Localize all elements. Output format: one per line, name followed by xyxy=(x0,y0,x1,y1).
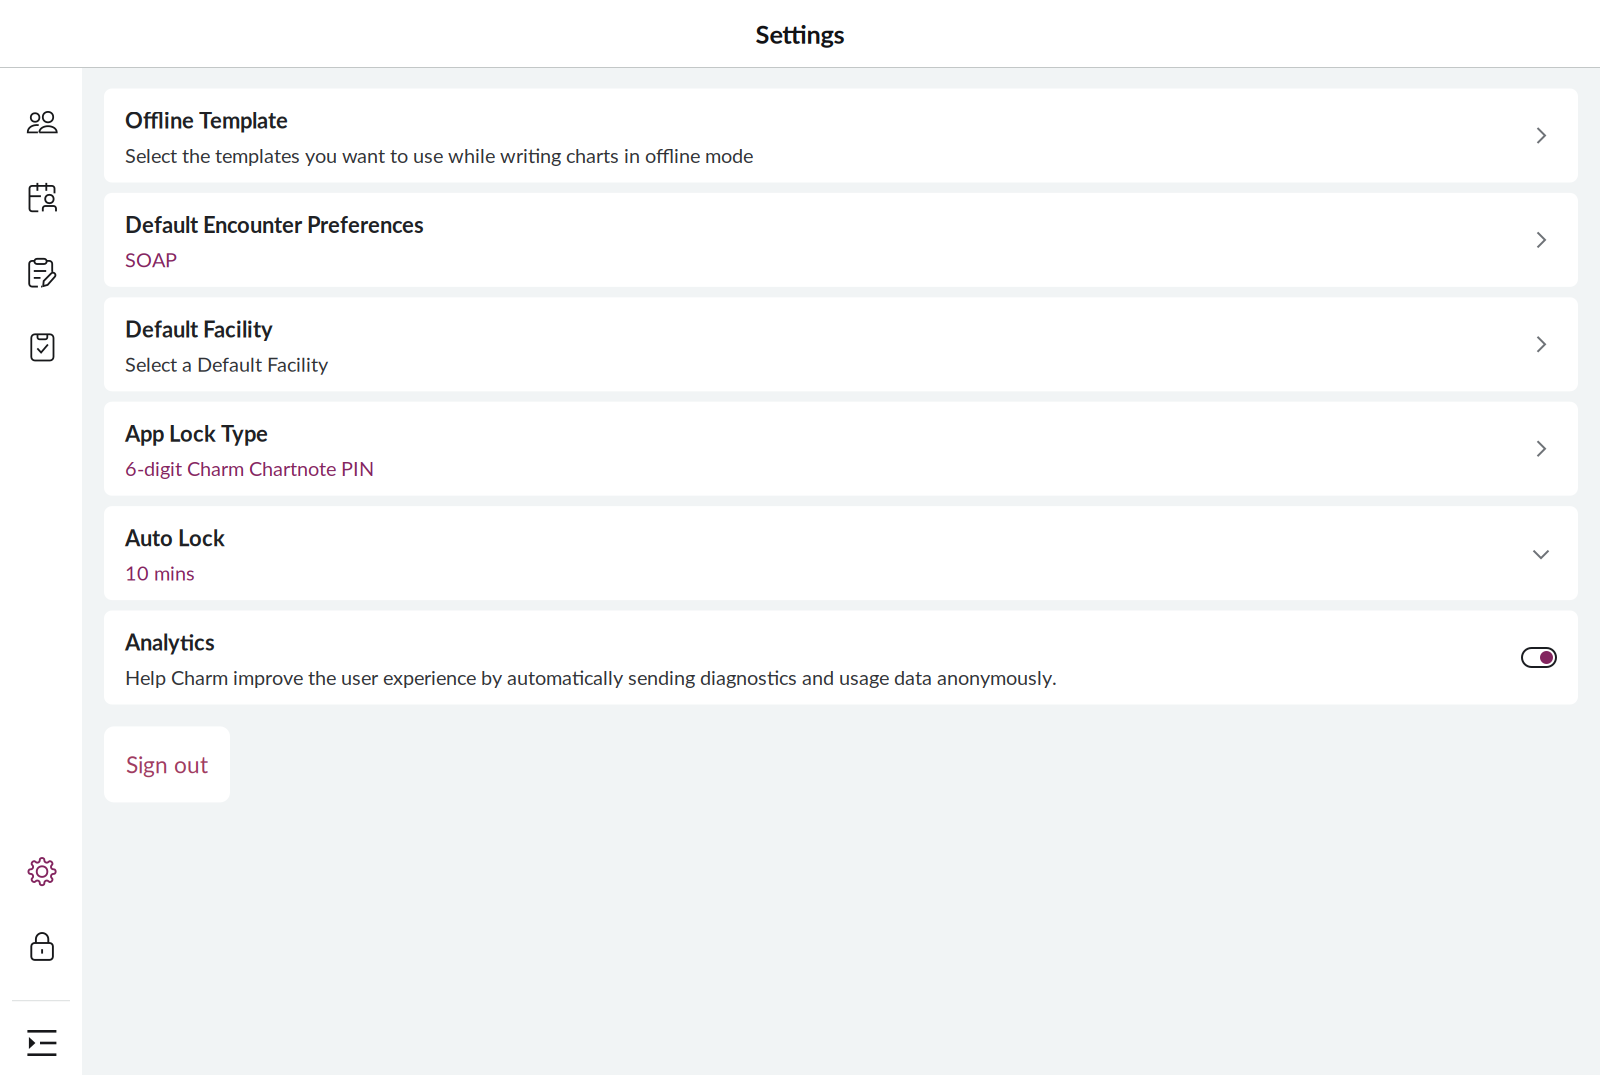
button[interactable]: Lock xyxy=(0,924,82,970)
staticText: SOAP xyxy=(125,248,177,271)
staticText: Default Facility xyxy=(125,316,273,342)
staticText: Select a Default Facility xyxy=(125,352,328,376)
button[interactable]: Sign out xyxy=(104,726,230,802)
button[interactable]: Patients xyxy=(0,99,82,145)
button[interactable]: Offline Template xyxy=(104,88,1578,182)
staticText: Sign out xyxy=(126,751,208,778)
button[interactable]: Auto Lock xyxy=(104,506,1578,600)
staticText: Help Charm improve the user experience b… xyxy=(125,665,1057,689)
staticText: Offline Template xyxy=(125,107,288,133)
button[interactable]: Tasks xyxy=(0,324,82,370)
staticText: Settings xyxy=(755,19,844,49)
button[interactable]: Collapse sidebar xyxy=(0,1020,82,1066)
button[interactable]: Charts xyxy=(0,250,82,296)
button[interactable]: Default Facility xyxy=(104,297,1578,391)
staticText: Default Encounter Preferences xyxy=(125,211,424,238)
button[interactable]: App Lock Type xyxy=(104,402,1578,496)
button[interactable]: Default Encounter Preferences xyxy=(104,193,1578,287)
staticText: App Lock Type xyxy=(125,420,268,446)
staticText: 10 mins xyxy=(125,561,195,585)
button[interactable]: Appointments xyxy=(0,174,82,220)
staticText: Analytics xyxy=(125,629,215,655)
button[interactable]: Analytics toggle xyxy=(1522,648,1556,667)
staticText: Select the templates you want to use whi… xyxy=(125,143,753,167)
staticText: Auto Lock xyxy=(125,524,225,551)
button[interactable]: Settings xyxy=(0,849,82,895)
staticText: 6-digit Charm Chartnote PIN xyxy=(125,456,374,480)
